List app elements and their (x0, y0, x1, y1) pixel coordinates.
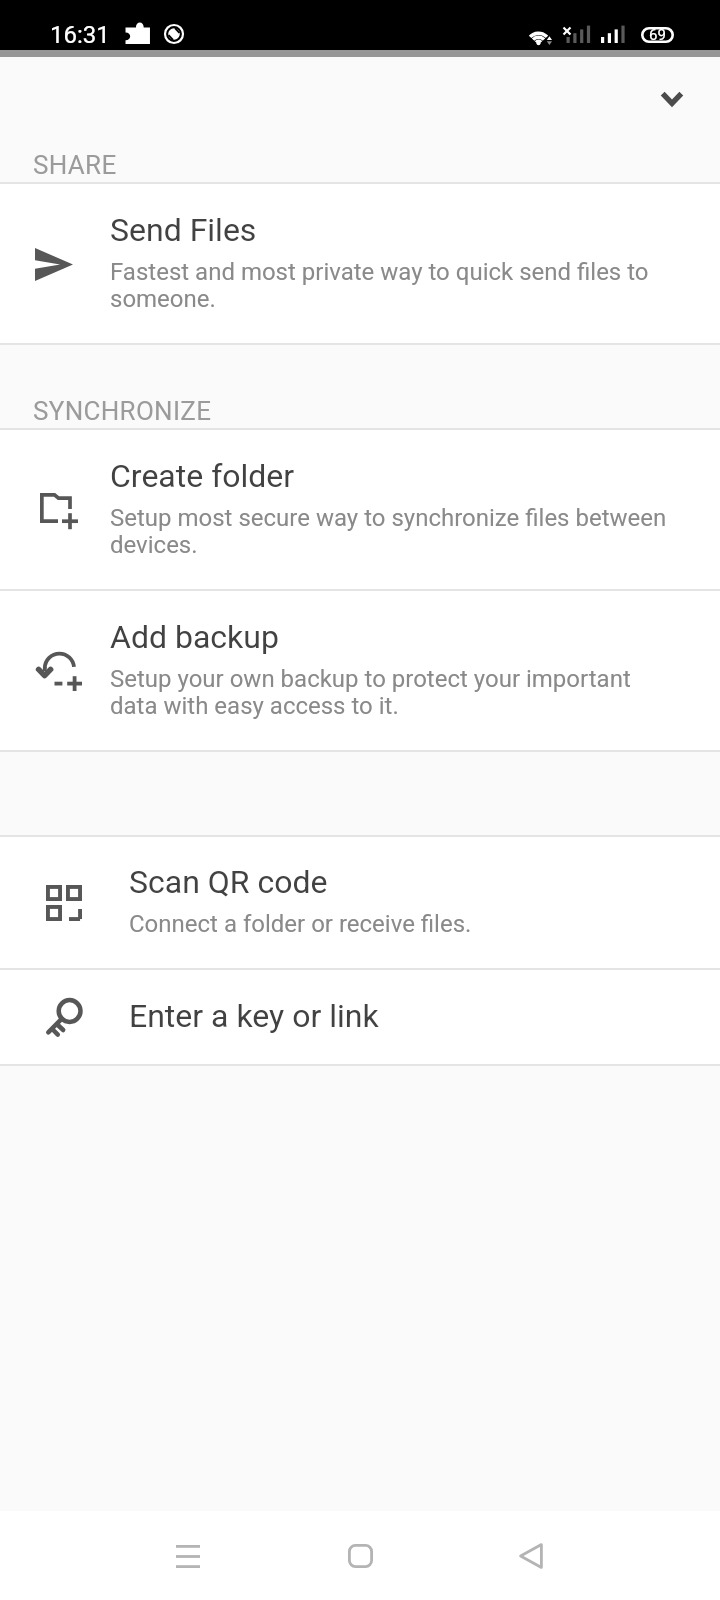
staticText: Create folder (110, 457, 295, 495)
staticText: 16:31 (50, 21, 110, 49)
staticText: SHARE (33, 150, 117, 180)
button[interactable]: Add backup (0, 591, 720, 750)
staticText: Setup your own backup to protect your im… (110, 665, 670, 720)
staticText: Send Files (110, 211, 257, 249)
button[interactable]: Collapse (640, 66, 704, 130)
staticText: Connect a folder or receive files. (129, 910, 472, 938)
button[interactable]: Recent apps (148, 1516, 228, 1596)
staticText: Enter a key or link (129, 997, 379, 1035)
button[interactable]: Scan QR code (0, 837, 720, 968)
staticText: Fastest and most private way to quick se… (110, 258, 670, 313)
staticText: 69 (649, 26, 666, 42)
staticText: Setup most secure way to synchronize fil… (110, 504, 670, 559)
button[interactable]: Send Files (0, 184, 720, 343)
staticText: Add backup (110, 618, 279, 656)
button[interactable]: Back (491, 1516, 571, 1596)
button[interactable]: Enter a key or link (0, 970, 720, 1064)
button[interactable]: Home (320, 1516, 400, 1596)
staticText: Scan QR code (129, 863, 328, 901)
staticText: SYNCHRONIZE (33, 396, 212, 426)
button[interactable]: Create folder (0, 430, 720, 589)
